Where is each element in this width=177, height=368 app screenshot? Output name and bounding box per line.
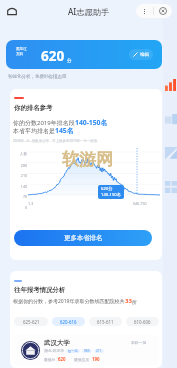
staticText: 210 <box>10 173 27 178</box>
button[interactable]: 武汉大学 <box>13 335 159 365</box>
button[interactable]: 620-616 <box>52 317 85 326</box>
button[interactable]: 625-621 <box>14 317 48 326</box>
staticText: 646-750 <box>133 201 147 206</box>
button[interactable]: 615-611 <box>89 317 122 326</box>
staticText: 610-606 <box>134 319 151 325</box>
staticText: 更多本省排名 <box>64 234 103 242</box>
staticText: 武汉大学 <box>44 339 70 347</box>
staticText: 黑龙江 <box>16 47 27 52</box>
staticText: 625-621 <box>23 319 40 325</box>
staticText: 140 <box>10 184 27 189</box>
staticText: 本省平均排名是 <box>13 127 55 135</box>
staticText: 双一流 <box>68 349 78 353</box>
button[interactable]: 610-606 <box>126 317 159 326</box>
staticText: 620分 <box>101 186 113 192</box>
button[interactable]: 黑龙江 <box>6 40 162 69</box>
button[interactable]: Home <box>6 5 18 17</box>
staticText: 140-150名 <box>101 192 121 198</box>
staticText: 70 <box>10 194 27 199</box>
staticText: 根据你的分数，参考2019年录取分数线匹配院校共 <box>13 298 125 305</box>
staticText: 编辑 <box>140 52 149 58</box>
staticText: 190 <box>92 356 100 362</box>
staticText: 往年报考情况分析 <box>14 286 66 294</box>
staticText: 本科一批 <box>131 340 147 345</box>
button[interactable]: Close <box>154 4 172 18</box>
button[interactable]: 编辑 <box>129 49 153 60</box>
staticText: 985 <box>84 349 90 353</box>
staticText: 140-150名 <box>75 118 108 127</box>
staticText: 280 <box>10 163 27 168</box>
staticText: 620 <box>41 47 65 65</box>
staticText: 人数 <box>10 152 27 157</box>
staticText: 软游网 <box>62 149 113 170</box>
button[interactable]: 更多本省排名 <box>14 230 152 246</box>
staticText: 2020年--分--段数未公布，可上级参考2019年一分一段表 <box>13 138 98 143</box>
staticText: 620-616 <box>60 319 77 325</box>
staticText: 文科 <box>16 52 24 57</box>
staticText: 智能化分析，免费助你报志愿 <box>8 74 67 80</box>
staticText: 你的排名参考 <box>14 104 53 112</box>
staticText: 最低分 <box>44 357 56 362</box>
staticText: 湖北 武汉市 <box>44 348 64 353</box>
staticText: 分 <box>67 58 72 64</box>
staticText: 33 <box>125 297 132 305</box>
staticText: 你的分数2019年排名段 <box>13 119 75 127</box>
staticText: 615-611 <box>97 319 114 325</box>
staticText: 620 <box>58 356 66 362</box>
staticText: 1-3 <box>28 201 34 206</box>
staticText: 所 <box>132 299 137 305</box>
staticText: AI志愿助手 <box>68 6 110 17</box>
staticText: 最低位次 <box>74 357 90 362</box>
staticText: 145名 <box>55 126 74 135</box>
staticText: 211 <box>96 349 102 353</box>
staticText: 0 <box>10 205 27 210</box>
button[interactable]: More options <box>136 4 153 18</box>
